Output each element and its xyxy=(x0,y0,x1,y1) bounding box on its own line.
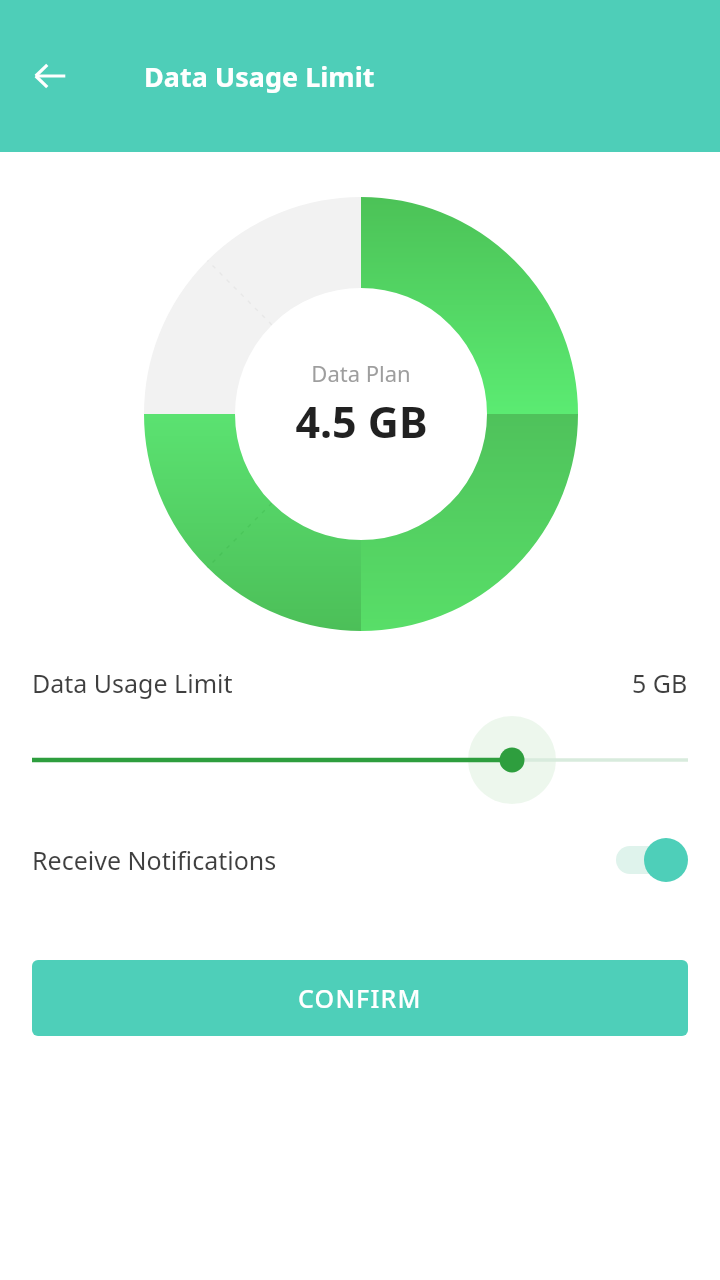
staticText: CONFIRM xyxy=(298,981,422,1015)
button[interactable]: CONFIRM xyxy=(32,960,688,1036)
button[interactable]: Data usage limit slider xyxy=(0,714,720,804)
button[interactable]: Receive Notifications xyxy=(0,804,720,916)
staticText: Data Usage Limit xyxy=(32,666,233,700)
staticText: 4.5 GB xyxy=(295,392,428,451)
button[interactable]: Back xyxy=(20,46,80,106)
staticText: Receive Notifications xyxy=(32,843,277,877)
staticText: Data Plan xyxy=(311,358,411,388)
other: Receive notifications toggle xyxy=(616,837,688,883)
staticText: Data Usage Limit xyxy=(144,58,375,95)
staticText: 5 GB xyxy=(632,666,688,700)
